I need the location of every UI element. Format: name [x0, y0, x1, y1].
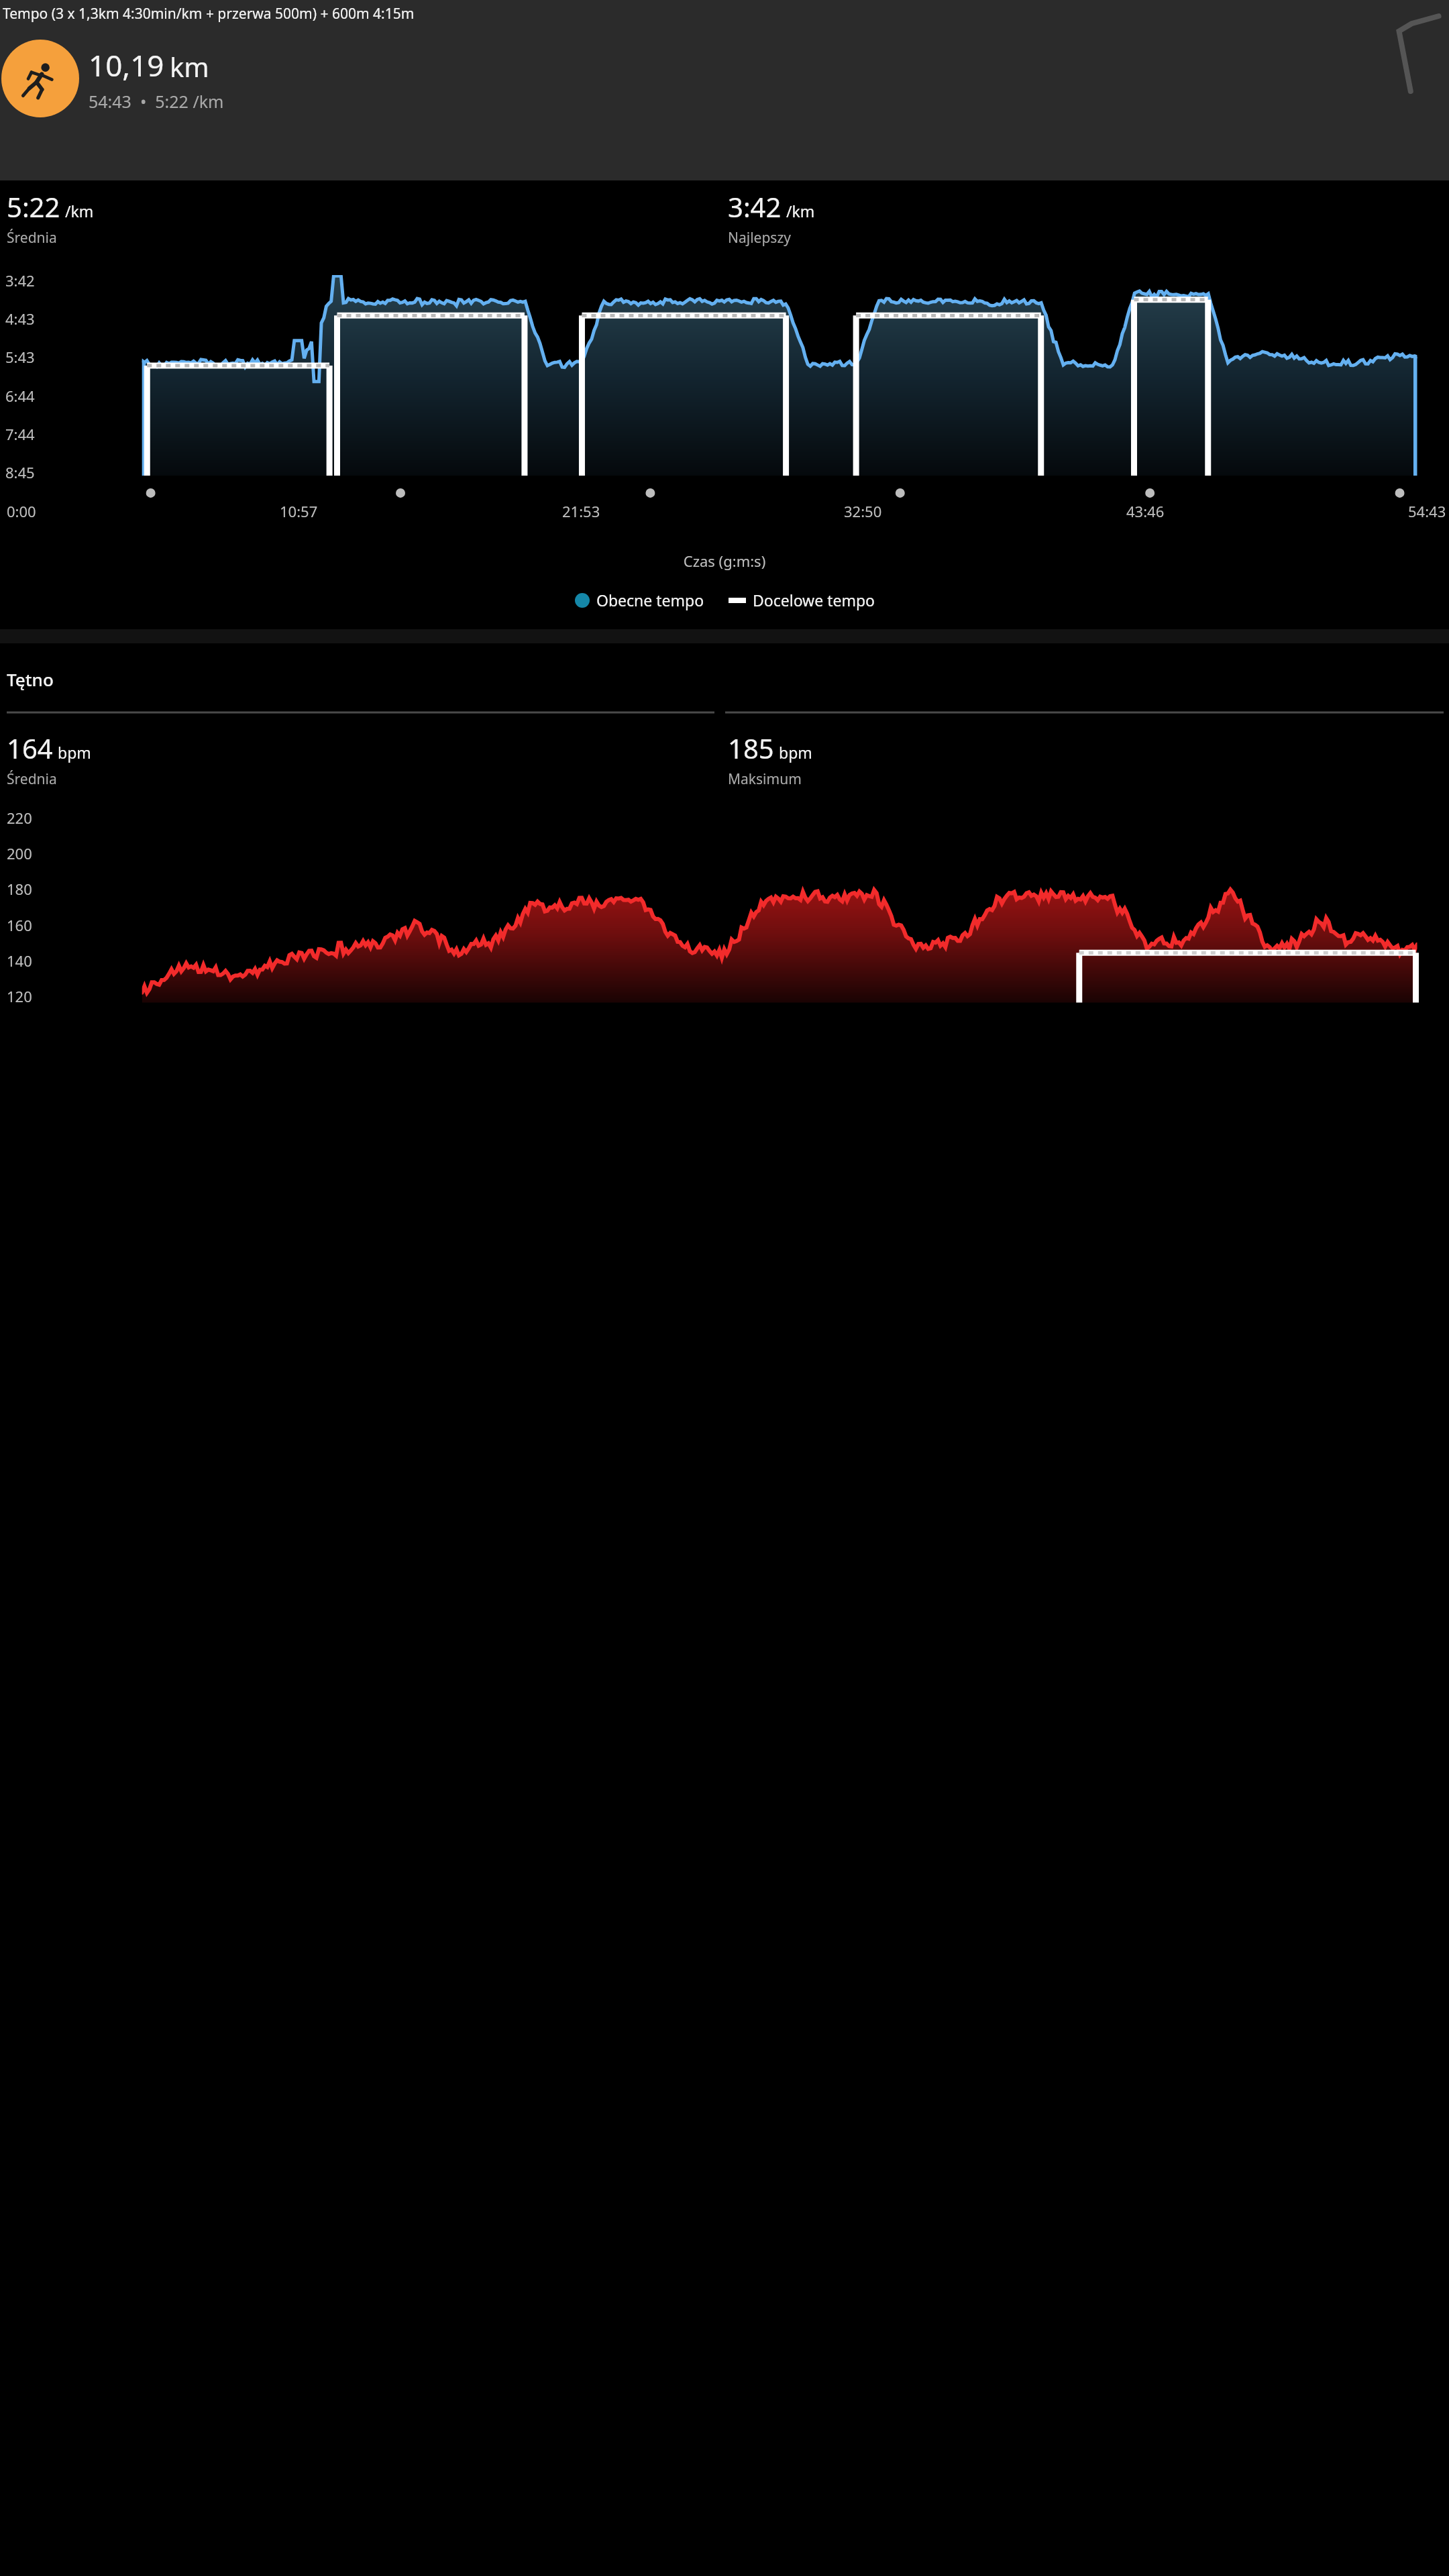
staticText: 5:22 [7, 189, 60, 225]
staticText: Maksimum [728, 769, 802, 789]
staticText: Tętno [7, 667, 54, 691]
staticText: 220 [7, 808, 32, 828]
staticText: 200 [7, 843, 32, 863]
other: Bieganie [1, 40, 79, 117]
button[interactable]: Tempo (3 x 1,3km 4:30min/km + przerwa 50… [0, 0, 1449, 180]
staticText: 54:43 [1408, 501, 1446, 521]
staticText: 120 [7, 986, 32, 1006]
staticText: 4:43 [5, 309, 35, 329]
staticText: Najlepszy [728, 228, 791, 248]
staticText: 6:44 [5, 386, 35, 406]
staticText: 54:43 • 5:22 /km [89, 90, 224, 113]
staticText: 43:46 [1126, 501, 1165, 521]
staticText: 21:53 [562, 501, 600, 521]
staticText: 3:42 [728, 189, 782, 225]
staticText: bpm [779, 742, 812, 763]
staticText: Średnia [7, 228, 57, 248]
staticText: 185 [728, 730, 774, 766]
staticText: 180 [7, 879, 32, 899]
staticText: 5:43 [5, 347, 35, 367]
staticText: Tempo (3 x 1,3km 4:30min/km + przerwa 50… [3, 4, 415, 23]
staticText: bpm [58, 742, 91, 763]
staticText: 10,19 [89, 45, 164, 85]
button[interactable]: Tętno [0, 643, 1449, 1008]
staticText: /km [65, 201, 94, 221]
staticText: Średnia [7, 769, 57, 789]
staticText: 0:00 [7, 501, 36, 521]
staticText: 32:50 [844, 501, 882, 521]
staticText: 8:45 [5, 462, 35, 482]
staticText: 164 [7, 730, 53, 766]
staticText: Obecne tempo [596, 590, 704, 610]
staticText: 10:57 [280, 501, 318, 521]
button[interactable]: 5:22 [0, 180, 1449, 629]
staticText: /km [786, 201, 815, 221]
staticText: 7:44 [5, 424, 35, 444]
staticText: 140 [7, 951, 32, 971]
staticText: km [170, 48, 209, 85]
staticText: Docelowe tempo [753, 590, 875, 610]
staticText: Czas (g:m:s) [0, 551, 1449, 571]
staticText: 3:42 [5, 270, 35, 290]
staticText: 160 [7, 915, 32, 935]
